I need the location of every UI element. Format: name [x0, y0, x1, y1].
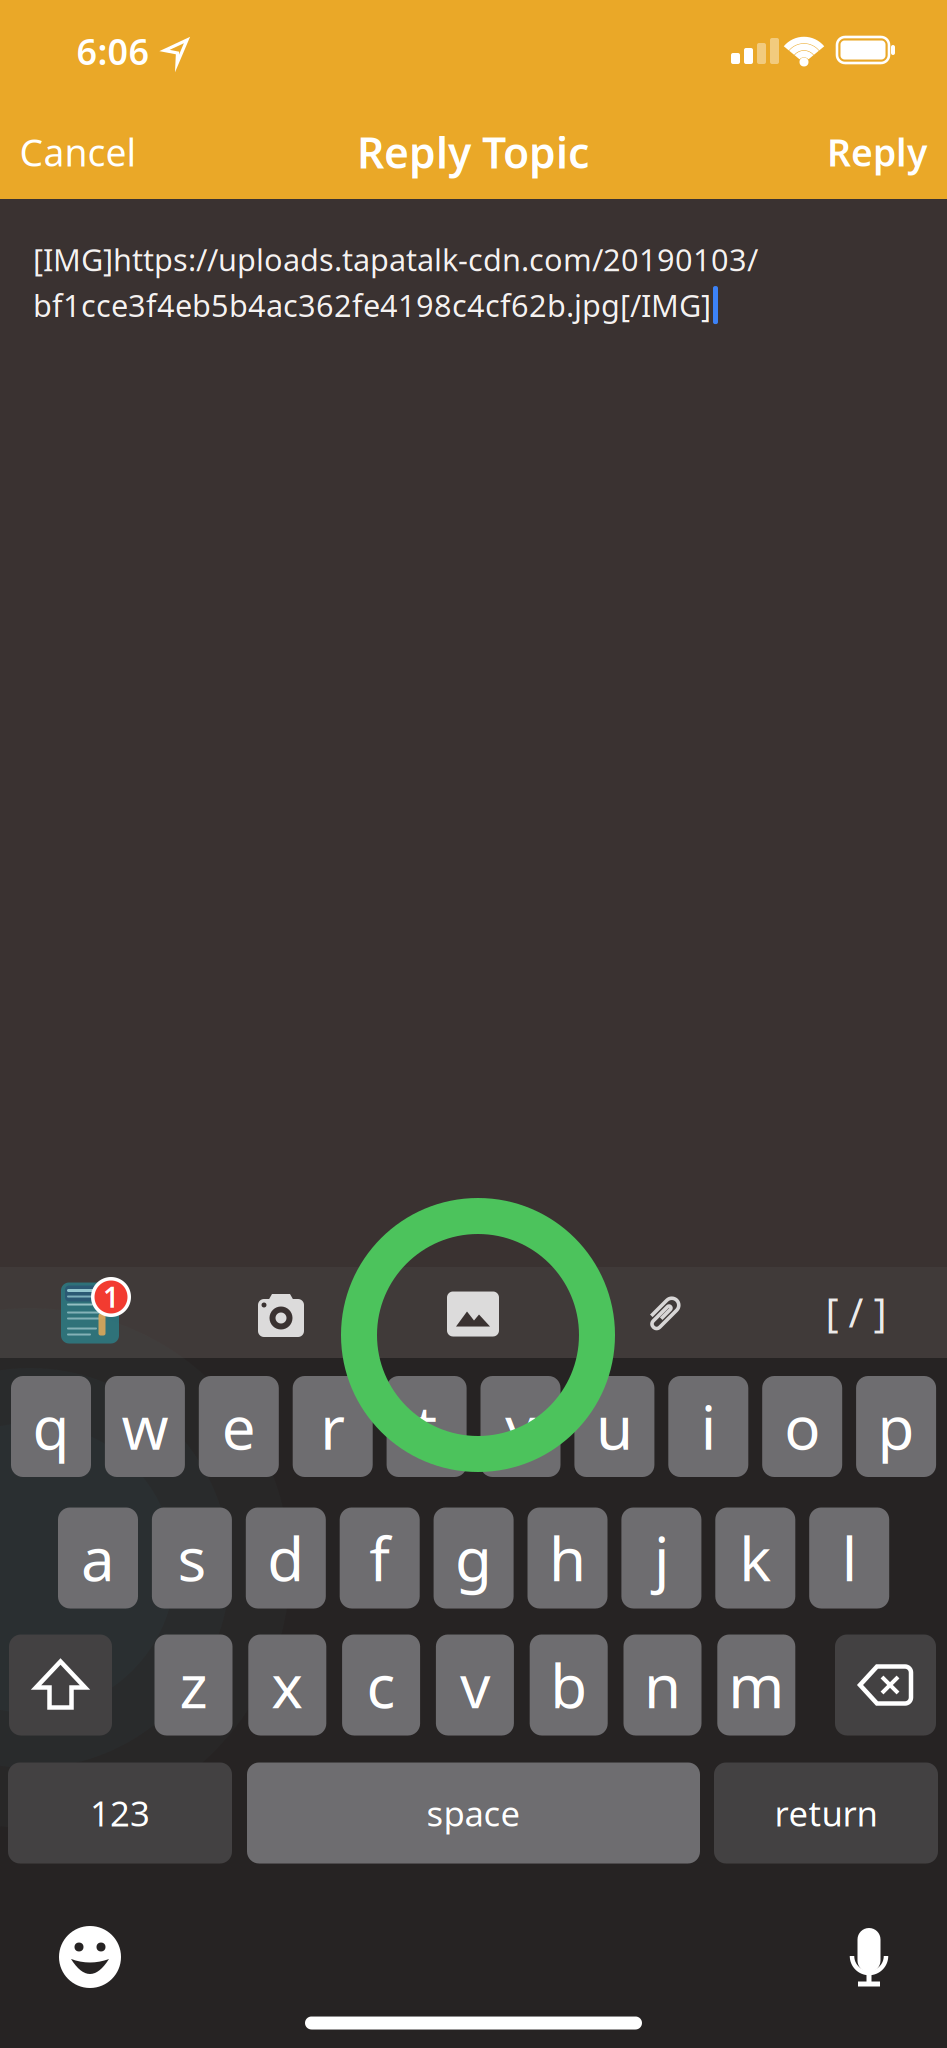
- staticText: n: [644, 1645, 681, 1725]
- button[interactable]: 123: [8, 1762, 232, 1863]
- button[interactable]: [447, 1291, 499, 1336]
- button[interactable]: [652, 1293, 676, 1333]
- staticText: x: [271, 1645, 303, 1725]
- staticText: Reply: [827, 127, 927, 177]
- button[interactable]: k: [715, 1507, 795, 1608]
- button[interactable]: m: [717, 1634, 795, 1735]
- button[interactable]: u: [574, 1376, 654, 1477]
- staticText: k: [739, 1518, 771, 1598]
- staticText: h: [549, 1518, 586, 1598]
- button[interactable]: z: [154, 1634, 232, 1735]
- staticText: u: [596, 1387, 633, 1466]
- staticText: v: [460, 1645, 490, 1725]
- button[interactable]: p: [856, 1376, 936, 1477]
- staticText: o: [784, 1387, 820, 1466]
- staticText: c: [367, 1645, 396, 1725]
- button[interactable]: [59, 1926, 121, 1988]
- staticText: m: [728, 1645, 784, 1725]
- button[interactable]: t: [387, 1376, 467, 1477]
- staticText: z: [179, 1645, 207, 1725]
- staticText: Reply Topic: [357, 124, 589, 180]
- staticText: 123: [90, 1790, 150, 1836]
- staticText: e: [222, 1387, 256, 1466]
- button[interactable]: [256, 1291, 306, 1339]
- button[interactable]: r: [293, 1376, 373, 1477]
- staticText: [IMG]https://uploads.tapatalk-cdn.com/20…: [33, 239, 758, 280]
- button[interactable]: l: [809, 1507, 889, 1608]
- button[interactable]: d: [246, 1507, 326, 1608]
- staticText: g: [455, 1518, 492, 1598]
- button[interactable]: a: [58, 1507, 138, 1608]
- button[interactable]: i: [668, 1376, 748, 1477]
- button[interactable]: b: [530, 1634, 608, 1735]
- staticText: bf1cce3f4eb5b4ac362fe4198c4cf62b.jpg[/IM…: [33, 285, 711, 325]
- button[interactable]: c: [342, 1634, 420, 1735]
- staticText: f: [369, 1518, 390, 1598]
- button[interactable]: [9, 1634, 112, 1735]
- staticText: j: [654, 1518, 669, 1598]
- button[interactable]: s: [152, 1507, 232, 1608]
- button[interactable]: q: [11, 1376, 91, 1477]
- button[interactable]: return: [714, 1762, 938, 1863]
- button[interactable]: [835, 1634, 936, 1735]
- staticText: a: [81, 1518, 115, 1598]
- button[interactable]: [ / ]: [825, 1285, 886, 1338]
- staticText: d: [267, 1518, 304, 1598]
- button[interactable]: [849, 1926, 889, 1990]
- button[interactable]: h: [527, 1507, 607, 1608]
- button[interactable]: w: [105, 1376, 185, 1477]
- button[interactable]: y: [480, 1376, 560, 1477]
- staticText: 1: [103, 1278, 119, 1316]
- button[interactable]: e: [199, 1376, 279, 1477]
- staticText: s: [177, 1518, 206, 1598]
- button[interactable]: g: [434, 1507, 514, 1608]
- staticText: Cancel: [19, 127, 136, 177]
- staticText: q: [32, 1387, 69, 1466]
- staticText: b: [550, 1645, 587, 1725]
- button[interactable]: x: [248, 1634, 326, 1735]
- staticText: p: [878, 1387, 915, 1466]
- staticText: l: [842, 1518, 857, 1598]
- button[interactable]: Reply: [827, 127, 927, 177]
- staticText: w: [121, 1387, 168, 1466]
- button[interactable]: v: [436, 1634, 514, 1735]
- button[interactable]: 1: [28, 1266, 194, 1357]
- button[interactable]: n: [623, 1634, 701, 1735]
- staticText: r: [320, 1387, 345, 1466]
- staticText: return: [774, 1790, 877, 1836]
- button[interactable]: space: [247, 1762, 700, 1863]
- button[interactable]: f: [340, 1507, 420, 1608]
- button[interactable]: o: [762, 1376, 842, 1477]
- button[interactable]: Cancel: [19, 127, 136, 177]
- button[interactable]: j: [621, 1507, 701, 1608]
- staticText: y: [505, 1387, 536, 1466]
- staticText: i: [701, 1387, 716, 1466]
- staticText: [ / ]: [825, 1285, 886, 1338]
- staticText: t: [416, 1387, 438, 1466]
- staticText: space: [426, 1790, 520, 1836]
- staticText: 6:06: [76, 27, 149, 75]
